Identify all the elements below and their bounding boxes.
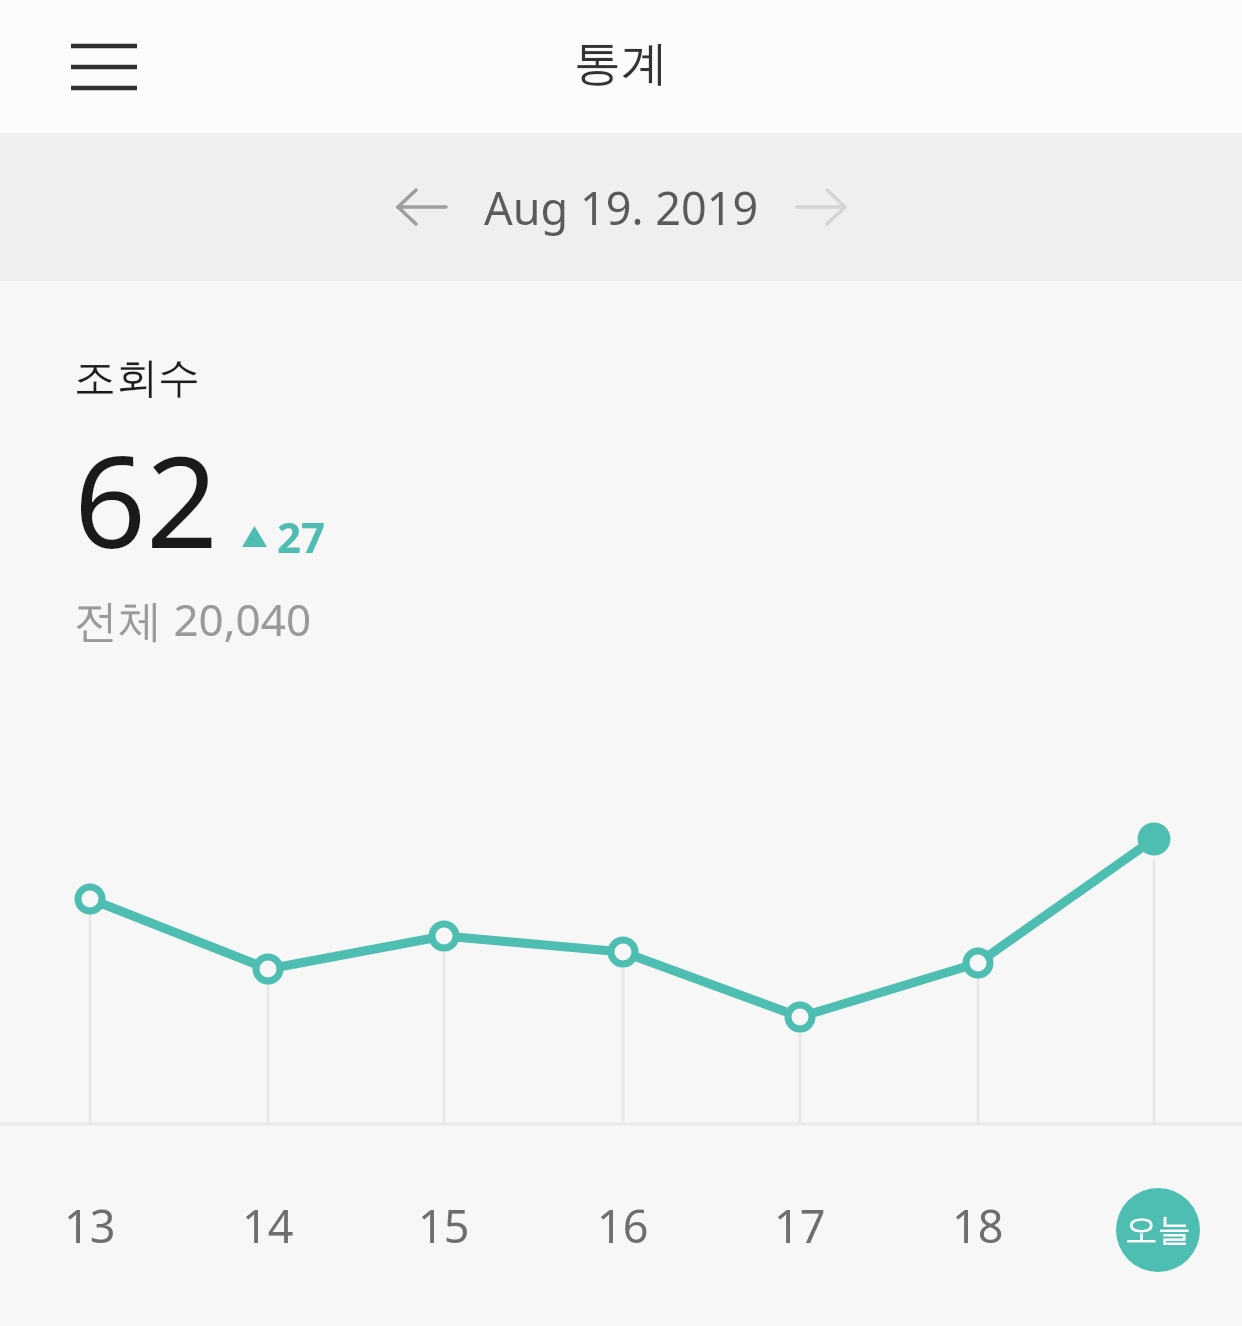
staticText: 16: [597, 1195, 649, 1256]
staticText: Aug 19. 2019: [484, 177, 759, 238]
staticText: 62: [74, 413, 219, 585]
button[interactable]: 오늘: [1116, 1188, 1200, 1272]
staticText: 13: [64, 1195, 116, 1256]
staticText: 조회수: [74, 352, 200, 405]
staticText: 18: [952, 1195, 1004, 1256]
staticText: 27: [277, 508, 326, 565]
staticText: 15: [418, 1195, 470, 1256]
button[interactable]: Previous day: [376, 161, 468, 253]
button[interactable]: Next day: [775, 161, 867, 253]
staticText: 오늘: [1125, 1209, 1191, 1251]
staticText: 17: [774, 1195, 826, 1256]
staticText: 14: [242, 1195, 294, 1256]
staticText: 전체 20,040: [74, 589, 312, 649]
button[interactable]: Menu: [40, 21, 136, 113]
staticText: 통계: [574, 34, 668, 93]
